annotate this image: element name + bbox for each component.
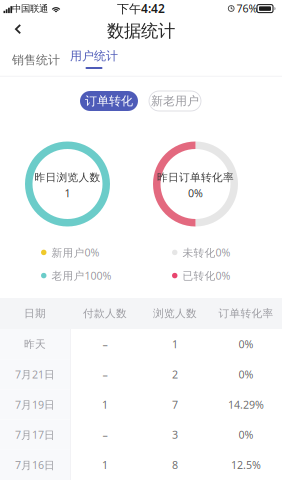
staticText: 0%: [238, 337, 253, 351]
staticText: 付款人数: [83, 307, 127, 320]
staticText: 7月17日: [15, 428, 55, 442]
button[interactable]: 销售统计: [6, 44, 66, 76]
button[interactable]: 7月21日: [0, 359, 282, 389]
staticText: –: [102, 337, 107, 351]
staticText: 7: [172, 397, 178, 412]
staticText: 7月21日: [15, 367, 55, 381]
staticText: –: [102, 367, 107, 381]
staticText: 12.5%: [231, 458, 261, 472]
staticText: 1: [102, 458, 108, 472]
staticText: 7月16日: [15, 458, 55, 472]
button[interactable]: 新老用户: [149, 91, 201, 111]
staticText: 未转化0%: [182, 245, 230, 259]
staticText: 数据统计: [107, 20, 175, 42]
staticText: 8: [172, 458, 178, 472]
staticText: 1: [64, 186, 70, 200]
button[interactable]: 订单转化: [80, 91, 138, 111]
staticText: 1: [172, 337, 178, 351]
staticText: 新用户0%: [51, 245, 99, 259]
button[interactable]: 用户统计: [64, 44, 124, 76]
button[interactable]: 7月16日: [0, 450, 282, 480]
staticText: 3: [172, 428, 178, 442]
staticText: 订单转化: [85, 94, 133, 108]
staticText: 已转化0%: [182, 268, 230, 283]
staticText: 中国联通: [12, 3, 48, 14]
staticText: 0%: [188, 186, 203, 200]
staticText: 7月19日: [15, 397, 55, 412]
staticText: 日期: [24, 307, 46, 320]
staticText: 订单转化率: [218, 307, 273, 320]
staticText: 2: [172, 367, 178, 381]
button[interactable]: 7月17日: [0, 420, 282, 450]
staticText: 0%: [238, 428, 253, 442]
staticText: 新老用户: [151, 94, 199, 108]
staticText: 0%: [238, 367, 253, 381]
staticText: 昨天: [24, 337, 46, 351]
staticText: 昨日订单转化率: [157, 171, 234, 184]
button[interactable]: 7月19日: [0, 389, 282, 420]
button[interactable]: Back: [1, 15, 35, 43]
button[interactable]: 昨天: [0, 329, 282, 359]
staticText: 用户统计: [70, 49, 118, 63]
staticText: 老用户100%: [51, 268, 111, 283]
staticText: 昨日浏览人数: [34, 171, 100, 184]
staticText: 销售统计: [12, 53, 60, 67]
staticText: –: [102, 428, 107, 442]
staticText: 14.29%: [228, 397, 264, 412]
staticText: 1: [102, 397, 108, 412]
staticText: 下午4:42: [117, 0, 165, 16]
staticText: 浏览人数: [153, 307, 197, 320]
staticText: 76%: [236, 1, 257, 15]
